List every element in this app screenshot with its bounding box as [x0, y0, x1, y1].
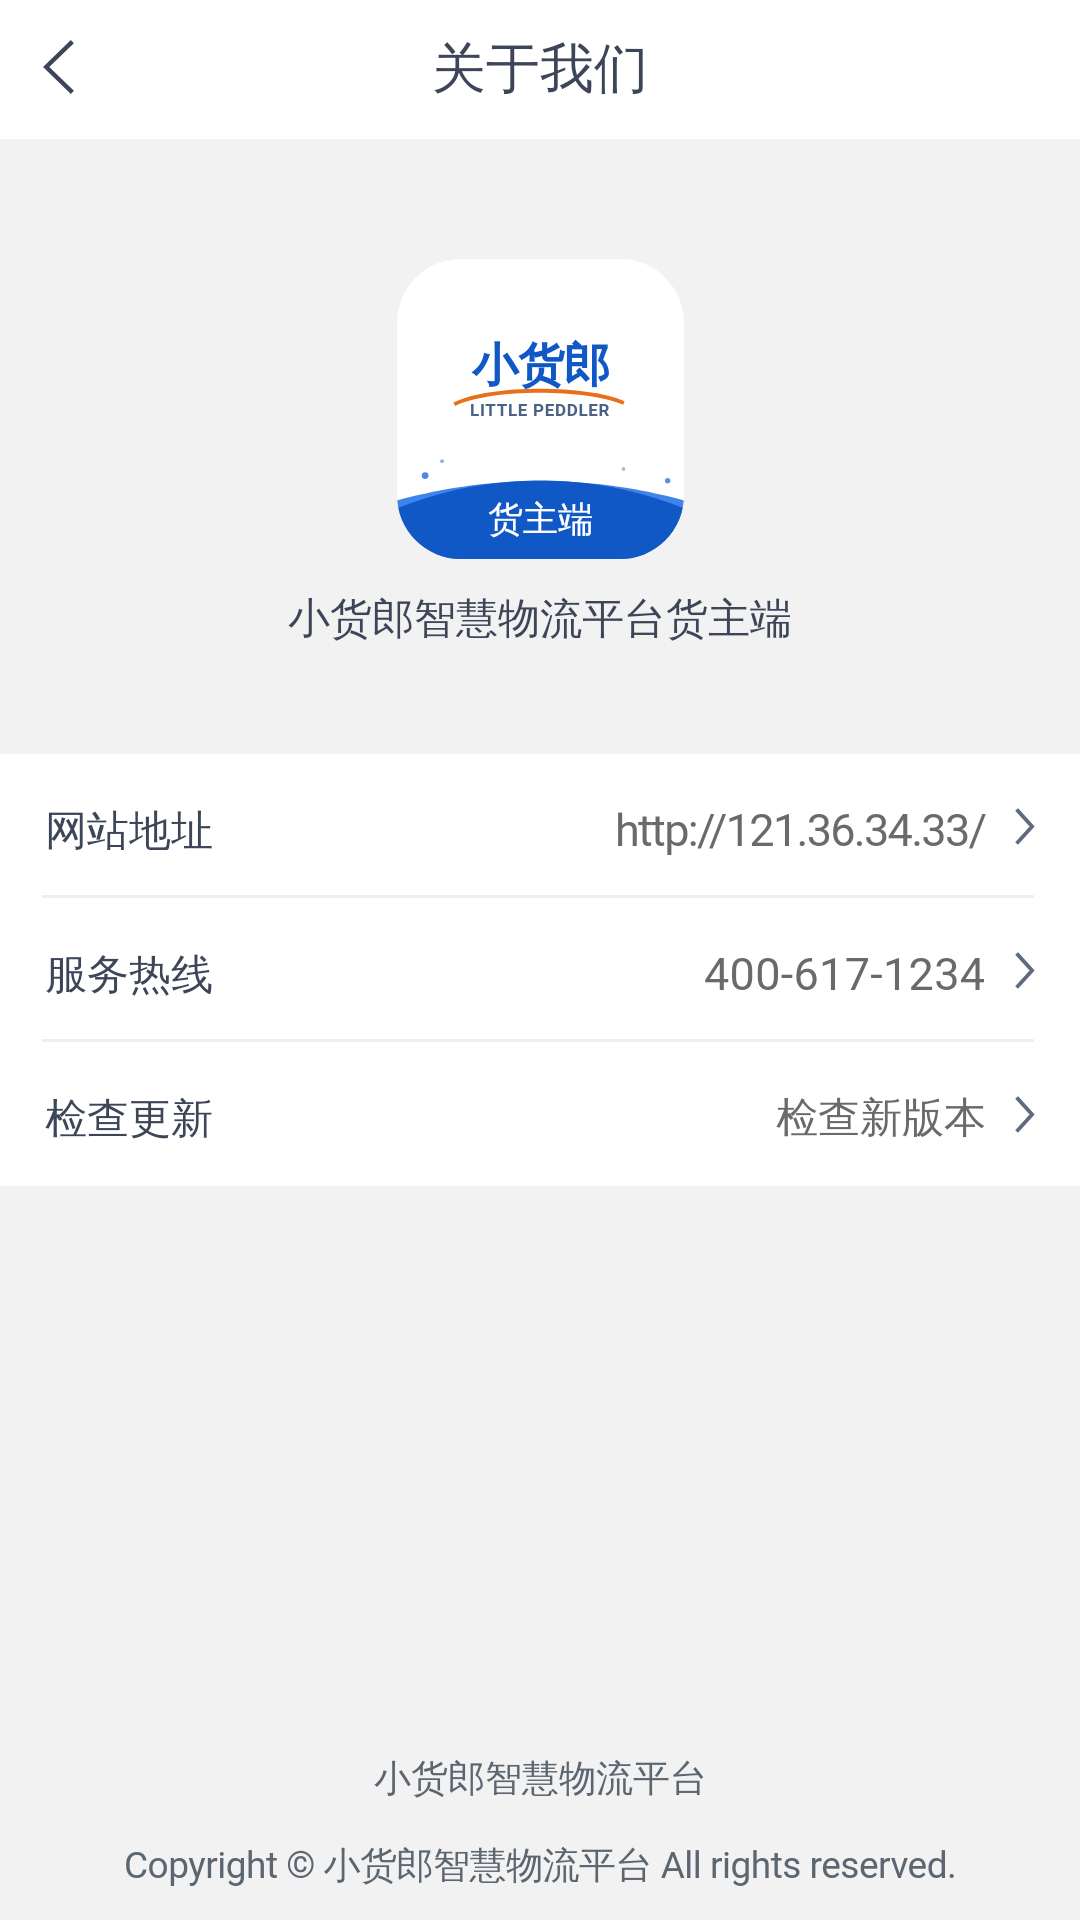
staticText: 检查新版本 — [776, 1092, 986, 1145]
button[interactable]: 网站地址 — [0, 754, 1080, 898]
staticText: 400-617-1234 — [704, 948, 986, 1001]
staticText: 网站地址 — [45, 805, 213, 858]
staticText: LITTLE PEDDLER — [470, 400, 611, 420]
staticText: 服务热线 — [45, 949, 213, 1002]
staticText: 货主端 — [488, 497, 593, 541]
staticText: Copyright © 小货郎智慧物流平台 All rights reserve… — [124, 1842, 957, 1889]
staticText: 小货郎智慧物流平台 — [374, 1755, 707, 1802]
staticText: http://121.36.34.33/ — [615, 804, 986, 857]
button[interactable]: 服务热线 — [0, 898, 1080, 1042]
staticText: 关于我们 — [432, 35, 648, 103]
button[interactable]: Back — [13, 22, 103, 112]
staticText: 小货郎智慧物流平台货主端 — [288, 593, 792, 646]
staticText: 小货郎 — [472, 337, 610, 395]
button[interactable]: 检查更新 — [0, 1042, 1080, 1186]
staticText: 检查更新 — [45, 1093, 213, 1146]
